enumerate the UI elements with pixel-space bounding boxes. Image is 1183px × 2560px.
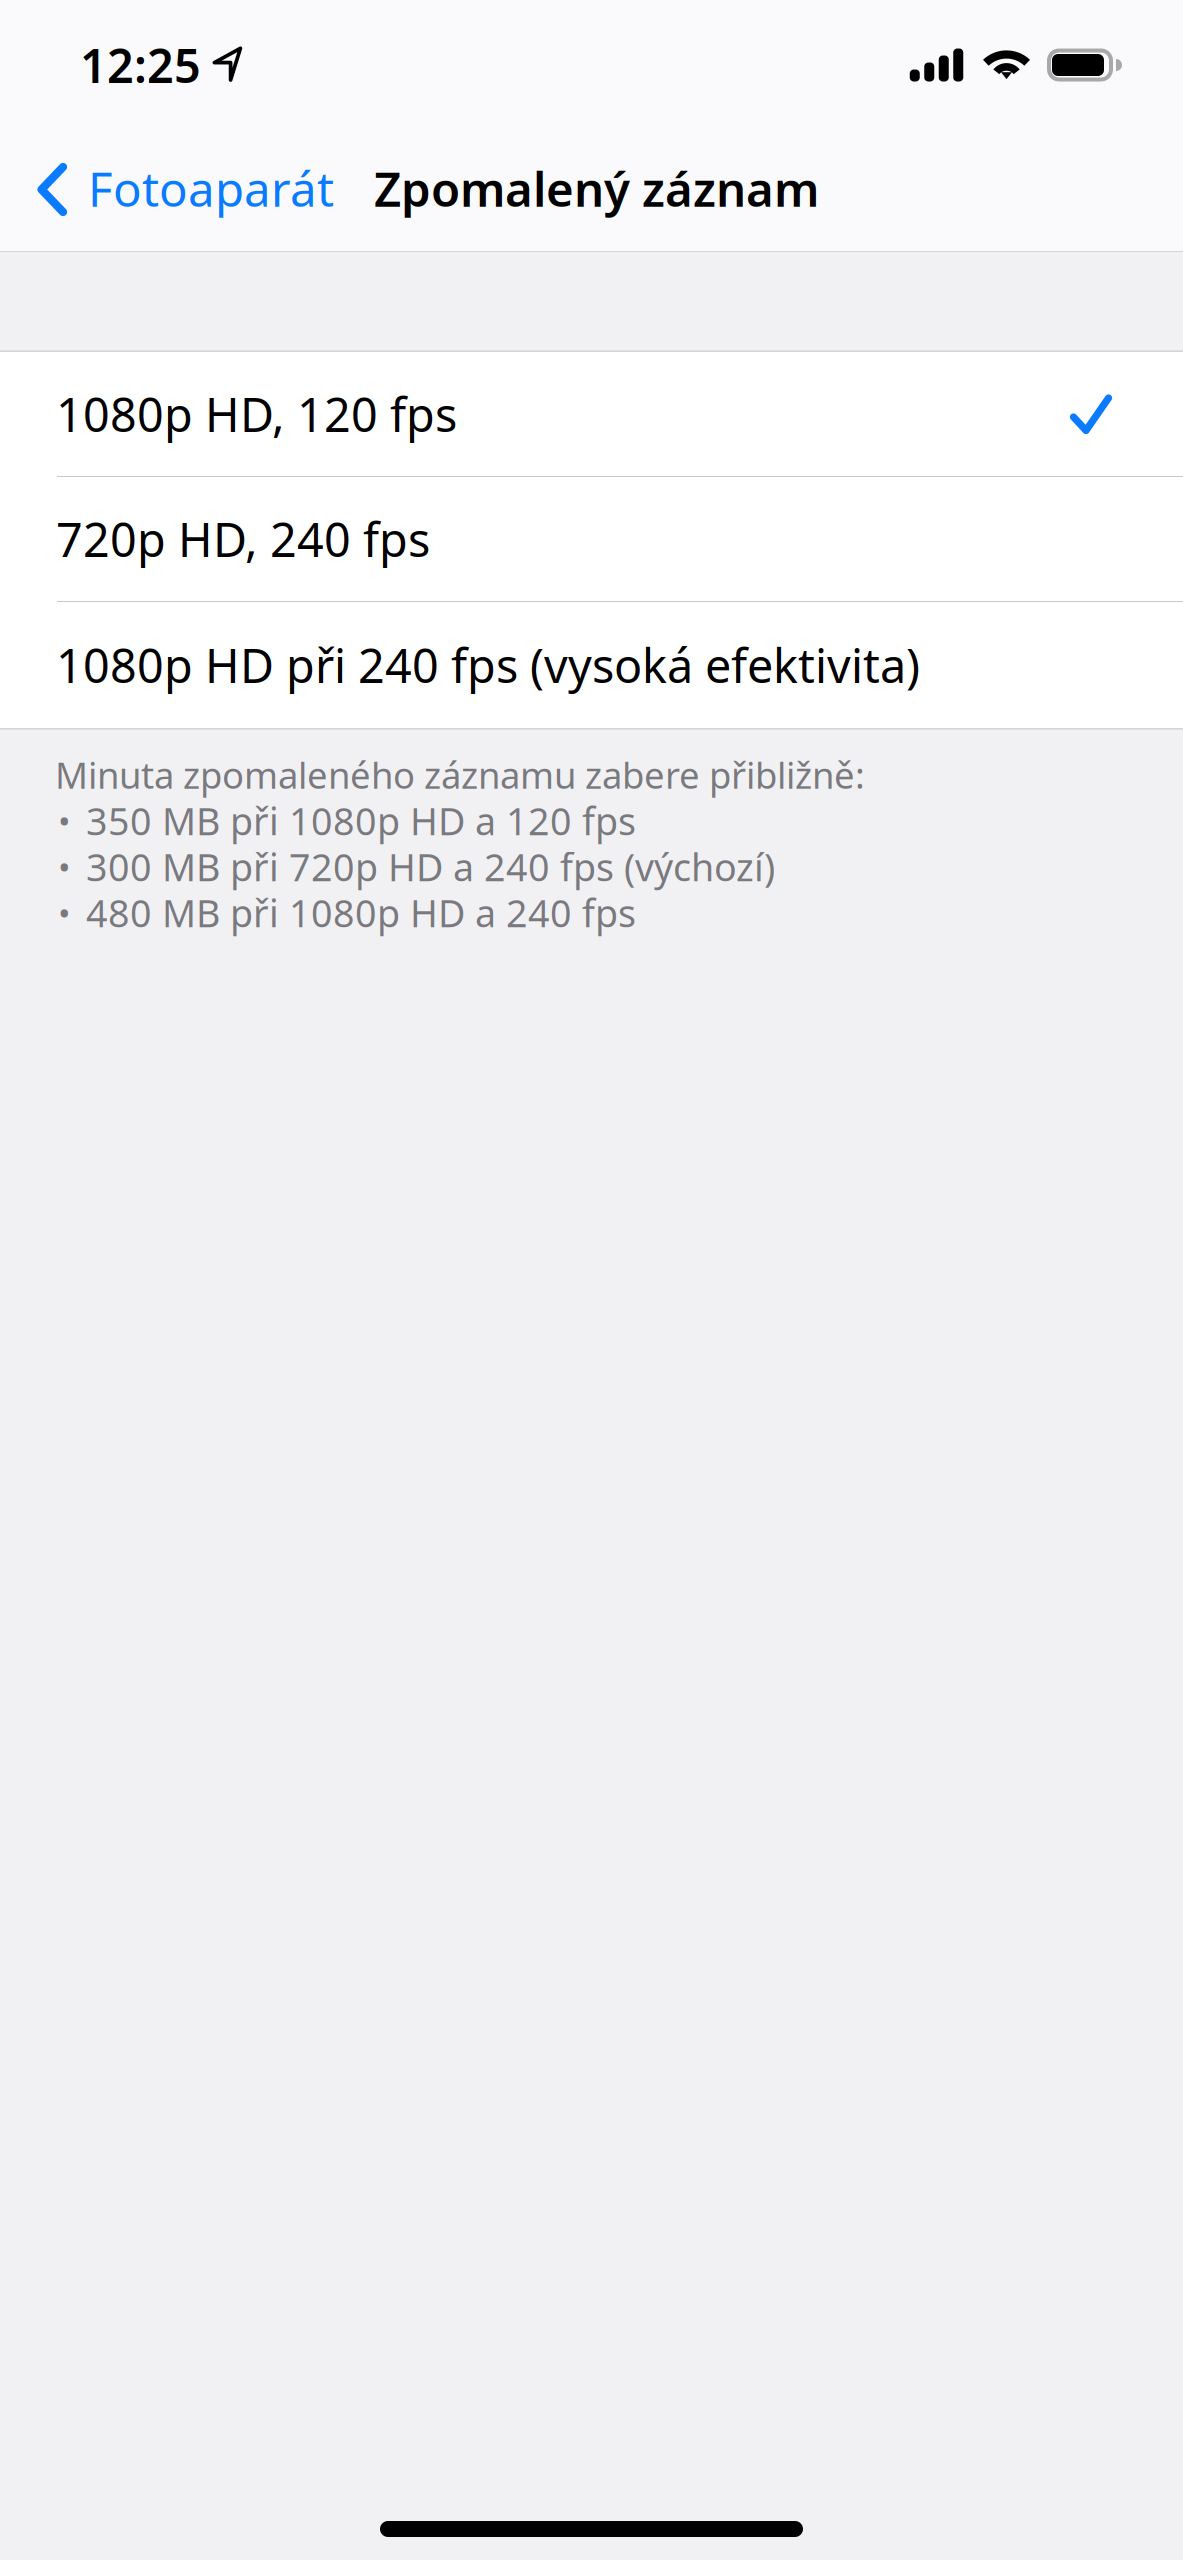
staticText: 12:25 [80, 34, 201, 96]
staticText: 300 MB při 720p HD a 240 fps (výchozí) [86, 842, 775, 891]
button[interactable]: 1080p HD, 120 fps [0, 352, 1183, 476]
button[interactable]: 720p HD, 240 fps [0, 477, 1183, 601]
staticText: 350 MB při 1080p HD a 120 fps [86, 796, 636, 845]
staticText: • [58, 844, 71, 889]
staticText: Fotoaparát [88, 157, 334, 220]
staticText: 1080p HD při 240 fps (vysoká efektivita) [56, 634, 920, 696]
staticText: 720p HD, 240 fps [56, 508, 430, 570]
staticText: 1080p HD, 120 fps [56, 383, 457, 445]
button[interactable]: Zpět na Fotoaparát [0, 140, 350, 251]
staticText: • [58, 890, 71, 935]
staticText: • [58, 798, 71, 843]
button[interactable]: 1080p HD při 240 fps (vysoká efektivita) [0, 602, 1183, 728]
staticText: Minuta zpomaleného záznamu zabere přibli… [55, 750, 865, 799]
staticText: Zpomalený záznam [374, 157, 819, 220]
staticText: 480 MB při 1080p HD a 240 fps [86, 888, 636, 937]
